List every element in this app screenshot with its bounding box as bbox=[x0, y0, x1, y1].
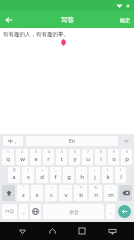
staticText: + bbox=[41, 168, 43, 172]
staticText: _ bbox=[55, 168, 57, 172]
button[interactable]: Recent apps bbox=[74, 223, 90, 239]
button[interactable]: 确定 bbox=[118, 15, 132, 25]
staticText: y bbox=[73, 155, 77, 163]
staticText: ?1☺ bbox=[5, 209, 14, 215]
button[interactable]: 7 bbox=[82, 149, 93, 165]
staticText: 确定 bbox=[120, 17, 130, 23]
button[interactable]: " bbox=[17, 185, 29, 201]
button[interactable]: Enter bbox=[118, 205, 131, 218]
staticText: p bbox=[125, 155, 129, 163]
button[interactable]: 1 bbox=[2, 149, 14, 165]
staticText: 有有趣的人，有有趣的事。 bbox=[3, 31, 69, 38]
button[interactable]: 0 bbox=[121, 149, 132, 165]
button[interactable]: 2 bbox=[16, 149, 28, 165]
button[interactable]: ) bbox=[115, 167, 126, 183]
staticText: r bbox=[47, 155, 50, 163]
button[interactable]: 8 bbox=[95, 149, 106, 165]
button[interactable]: 中， bbox=[3, 136, 23, 146]
staticText: @ bbox=[13, 168, 16, 172]
staticText: t bbox=[60, 155, 63, 163]
staticText: En bbox=[69, 138, 75, 145]
button[interactable]: 5 bbox=[56, 149, 67, 165]
button[interactable]: ( bbox=[102, 167, 113, 183]
staticText: ' bbox=[37, 186, 38, 190]
staticText: ; bbox=[94, 168, 95, 172]
staticText: 6 bbox=[74, 150, 76, 154]
button[interactable]: 4 bbox=[43, 149, 54, 165]
staticText: , bbox=[65, 186, 66, 190]
staticText: ! bbox=[51, 186, 52, 190]
button[interactable]: 拼音 bbox=[43, 204, 104, 219]
staticText: u bbox=[86, 155, 90, 163]
staticText: 拼音 bbox=[69, 209, 79, 215]
staticText: o bbox=[112, 155, 116, 163]
staticText: % bbox=[94, 186, 97, 190]
staticText: . bbox=[110, 208, 112, 216]
button[interactable]: ' bbox=[31, 185, 43, 201]
staticText: l bbox=[120, 173, 122, 181]
staticText: 2 bbox=[21, 150, 23, 154]
button[interactable]: ~ bbox=[104, 185, 117, 201]
staticText: 4 bbox=[48, 150, 50, 154]
button[interactable]: Backspace bbox=[119, 185, 132, 201]
staticText: k bbox=[106, 173, 110, 181]
staticText: s bbox=[27, 173, 30, 181]
button[interactable]: More options bbox=[121, 136, 131, 146]
staticText: ? bbox=[80, 186, 82, 190]
staticText: , bbox=[23, 208, 25, 216]
button[interactable]: ; bbox=[89, 167, 100, 183]
button[interactable]: - bbox=[63, 167, 74, 183]
staticText: 3 bbox=[35, 150, 37, 154]
staticText: i bbox=[100, 155, 102, 163]
staticText: a bbox=[12, 173, 16, 181]
button[interactable]: + bbox=[36, 167, 48, 183]
button[interactable]: _ bbox=[50, 167, 61, 183]
button[interactable]: Shift bbox=[2, 185, 15, 201]
button[interactable]: 6 bbox=[69, 149, 80, 165]
staticText: 写答 bbox=[61, 16, 74, 24]
staticText: : bbox=[81, 168, 82, 172]
staticText: m bbox=[108, 191, 114, 199]
button[interactable]: Back bbox=[14, 223, 30, 239]
staticText: h bbox=[80, 173, 84, 181]
staticText: c bbox=[50, 191, 53, 199]
staticText: w bbox=[20, 155, 25, 163]
button[interactable]: ! bbox=[45, 185, 57, 201]
staticText: ) bbox=[120, 168, 121, 172]
button[interactable]: En bbox=[26, 136, 118, 146]
staticText: ~ bbox=[110, 186, 112, 190]
button[interactable]: : bbox=[76, 167, 87, 183]
button[interactable]: % bbox=[89, 185, 102, 201]
button[interactable]: / bbox=[22, 167, 34, 183]
staticText: v bbox=[64, 191, 68, 199]
button[interactable]: @ bbox=[8, 167, 20, 183]
button[interactable]: ? bbox=[74, 185, 87, 201]
button[interactable]: Change keyboard language bbox=[30, 204, 41, 219]
staticText: j bbox=[94, 173, 96, 181]
button[interactable]: , bbox=[19, 204, 28, 219]
button[interactable]: , bbox=[59, 185, 72, 201]
staticText: n bbox=[94, 191, 98, 199]
staticText: g bbox=[67, 173, 71, 181]
staticText: 1 bbox=[7, 150, 9, 154]
staticText: 中， bbox=[8, 138, 18, 144]
staticText: 0 bbox=[126, 150, 128, 154]
button[interactable]: ?1☺ bbox=[2, 204, 17, 219]
button[interactable]: 3 bbox=[30, 149, 41, 165]
staticText: " bbox=[22, 186, 24, 190]
staticText: x bbox=[35, 191, 39, 199]
staticText: e bbox=[34, 155, 38, 163]
staticText: - bbox=[68, 168, 70, 172]
button[interactable]: . bbox=[106, 204, 115, 219]
button[interactable]: Back bbox=[2, 13, 16, 27]
staticText: 8 bbox=[100, 150, 102, 154]
staticText: f bbox=[54, 173, 57, 181]
staticText: 5 bbox=[61, 150, 63, 154]
button[interactable]: Home bbox=[44, 223, 60, 239]
button[interactable]: 9 bbox=[108, 149, 119, 165]
staticText: / bbox=[27, 168, 29, 172]
staticText: q bbox=[6, 155, 10, 163]
button[interactable]: Hide keyboard bbox=[104, 223, 120, 239]
staticText: b bbox=[79, 191, 83, 199]
staticText: 7 bbox=[87, 150, 89, 154]
